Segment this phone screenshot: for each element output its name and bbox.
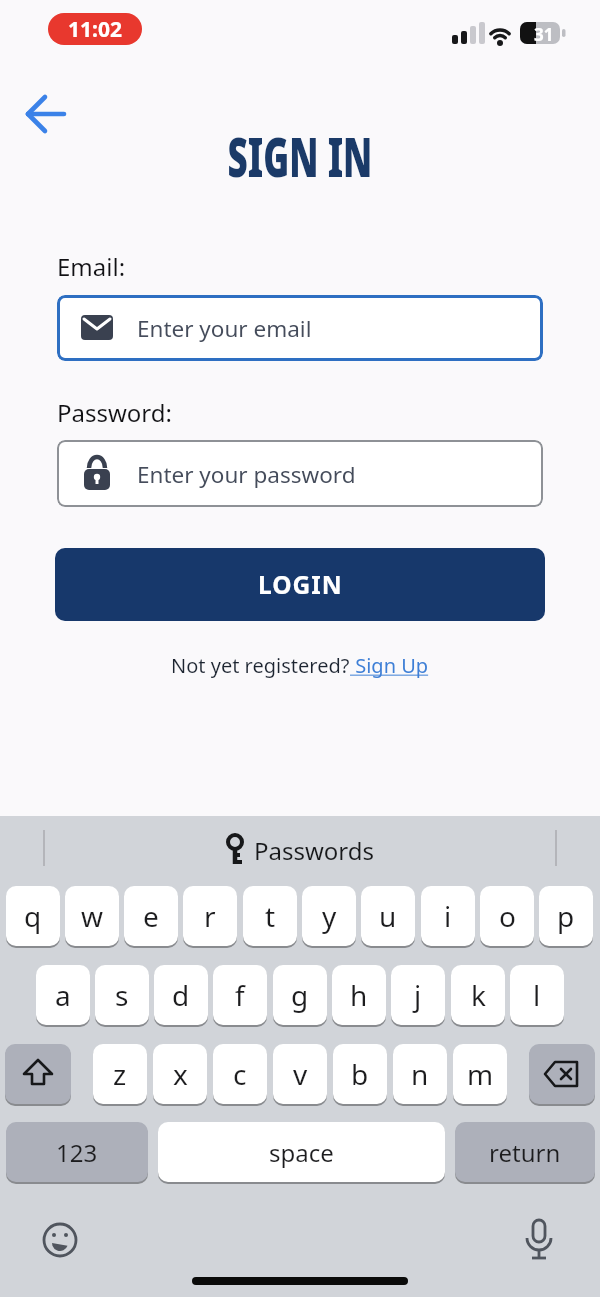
- staticText: s: [115, 976, 129, 1014]
- button[interactable]: return: [455, 1122, 595, 1182]
- staticText: LOGIN: [258, 568, 343, 601]
- button[interactable]: t: [243, 886, 297, 946]
- staticText: o: [499, 897, 516, 935]
- button[interactable]: Passwords: [0, 832, 600, 868]
- button[interactable]: y: [302, 886, 356, 946]
- button[interactable]: c: [213, 1044, 267, 1104]
- button[interactable]: n: [393, 1044, 447, 1104]
- button[interactable]: [5, 1044, 71, 1104]
- button[interactable]: b: [333, 1044, 387, 1104]
- staticText: k: [471, 976, 486, 1014]
- button[interactable]: s: [95, 965, 149, 1025]
- button[interactable]: k: [451, 965, 505, 1025]
- staticText: j: [414, 976, 422, 1014]
- button[interactable]: v: [273, 1044, 327, 1104]
- button[interactable]: g: [273, 965, 327, 1025]
- button[interactable]: q: [6, 886, 60, 946]
- button[interactable]: z: [93, 1044, 147, 1104]
- staticText: space: [269, 1136, 334, 1169]
- staticText: Enter your password: [137, 459, 356, 490]
- staticText: f: [235, 976, 245, 1014]
- button[interactable]: i: [421, 886, 475, 946]
- staticText: x: [173, 1055, 188, 1093]
- staticText: b: [351, 1055, 369, 1093]
- staticText: h: [350, 976, 368, 1014]
- staticText: Passwords: [254, 834, 375, 867]
- staticText: r: [204, 897, 216, 935]
- staticText: i: [444, 897, 452, 935]
- staticText: c: [233, 1055, 247, 1093]
- staticText: 123: [56, 1136, 98, 1169]
- staticText: Not yet registered?: [171, 652, 350, 679]
- staticText: t: [265, 897, 276, 935]
- button[interactable]: [529, 1044, 595, 1104]
- staticText: p: [557, 897, 575, 935]
- staticText: Email:: [57, 250, 126, 283]
- button[interactable]: Sign Up: [350, 652, 429, 679]
- button[interactable]: o: [480, 886, 534, 946]
- button[interactable]: Enter your password: [57, 440, 543, 507]
- staticText: y: [322, 897, 337, 935]
- button[interactable]: x: [153, 1044, 207, 1104]
- button[interactable]: Enter your email: [57, 295, 543, 361]
- staticText: l: [533, 976, 541, 1014]
- staticText: v: [293, 1055, 308, 1093]
- button[interactable]: a: [36, 965, 90, 1025]
- button[interactable]: m: [453, 1044, 507, 1104]
- staticText: Sign Up: [350, 652, 429, 679]
- button[interactable]: [22, 94, 68, 134]
- button[interactable]: e: [124, 886, 178, 946]
- staticText: return: [489, 1136, 561, 1169]
- button[interactable]: 123: [6, 1122, 148, 1182]
- staticText: z: [113, 1055, 127, 1093]
- button[interactable]: h: [332, 965, 386, 1025]
- staticText: Enter your email: [137, 313, 312, 344]
- button[interactable]: LOGIN: [55, 548, 545, 621]
- staticText: 11:02: [68, 15, 122, 44]
- staticText: w: [81, 897, 104, 935]
- staticText: m: [467, 1055, 494, 1093]
- staticText: u: [379, 897, 397, 935]
- button[interactable]: [42, 1222, 78, 1258]
- button[interactable]: r: [183, 886, 237, 946]
- button[interactable]: u: [361, 886, 415, 946]
- button[interactable]: j: [391, 965, 445, 1025]
- staticText: SIGN IN: [105, 119, 495, 193]
- staticText: Password:: [57, 396, 172, 429]
- button[interactable]: w: [65, 886, 119, 946]
- button[interactable]: f: [213, 965, 267, 1025]
- button[interactable]: l: [510, 965, 564, 1025]
- button[interactable]: space: [158, 1122, 445, 1182]
- button[interactable]: d: [154, 965, 208, 1025]
- button[interactable]: [522, 1218, 556, 1262]
- staticText: 31: [534, 23, 554, 46]
- staticText: e: [143, 897, 159, 935]
- staticText: a: [55, 976, 71, 1014]
- staticText: q: [24, 897, 42, 935]
- button[interactable]: p: [539, 886, 593, 946]
- staticText: n: [411, 1055, 429, 1093]
- staticText: d: [172, 976, 190, 1014]
- staticText: g: [291, 976, 309, 1014]
